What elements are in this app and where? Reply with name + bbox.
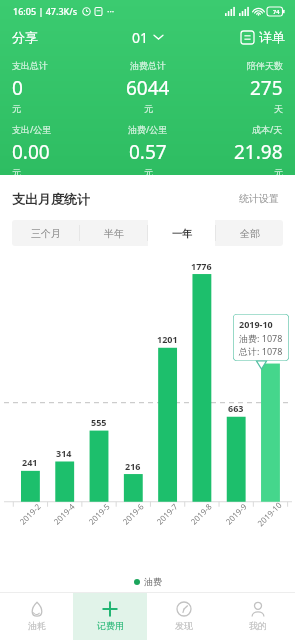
staticText: 74 <box>273 8 280 15</box>
staticText: 统计设置 <box>239 192 279 205</box>
staticText: 2019-6 <box>120 500 146 527</box>
button[interactable]: 统计设置 <box>235 188 283 209</box>
staticText: 元 <box>12 103 21 114</box>
staticText: 成本/天 <box>252 123 283 135</box>
staticText: 记费用 <box>97 620 124 631</box>
staticText: 支出/公里 <box>12 123 52 135</box>
staticText: 支出月度统计 <box>12 191 90 207</box>
staticText: 0.00 <box>12 139 50 165</box>
staticText: 详单 <box>259 29 285 45</box>
staticText: 2019-7 <box>154 500 180 527</box>
staticText: 2019-8 <box>188 500 214 527</box>
staticText: ··· <box>107 5 115 17</box>
staticText: 216 <box>125 460 141 472</box>
button[interactable]: 我的 <box>221 593 295 640</box>
staticText: 油费: 1078 <box>239 332 283 344</box>
staticText: 16:05 | 47.3K/s <box>13 5 78 17</box>
button[interactable]: 全部 <box>216 220 283 246</box>
staticText: 01 <box>132 28 149 46</box>
staticText: 1776 <box>191 260 212 272</box>
button[interactable]: 油耗 <box>0 593 73 640</box>
staticText: 663 <box>228 402 244 414</box>
staticText: 半年 <box>104 227 124 240</box>
staticText: 油费/公里 <box>128 123 168 135</box>
button[interactable]: 一年 <box>148 220 215 246</box>
staticText: 0.57 <box>129 139 167 165</box>
staticText: 一年 <box>172 227 192 240</box>
staticText: 分享 <box>12 29 38 45</box>
staticText: 陪伴天数 <box>247 60 283 71</box>
staticText: 1078 <box>259 349 280 361</box>
staticText: 元 <box>12 167 21 175</box>
staticText: 241 <box>22 456 38 468</box>
other: 油耗 <box>29 601 45 617</box>
staticText: 21.98 <box>234 139 283 165</box>
button[interactable]: 发现 <box>147 593 221 640</box>
staticText: 发现 <box>175 620 193 631</box>
staticText: 我的 <box>249 620 267 631</box>
button[interactable]: 分享 <box>0 24 50 50</box>
staticText: 三个月 <box>31 227 61 240</box>
staticText: 275 <box>250 75 283 101</box>
staticText: 总计: 1078 <box>239 345 283 357</box>
staticText: 6044 <box>126 75 170 101</box>
staticText: 元 <box>144 167 153 175</box>
staticText: 2019-2 <box>17 500 43 527</box>
staticText: 元 <box>274 167 283 175</box>
button[interactable]: 01 <box>126 22 169 52</box>
staticText: 2019-10 <box>239 318 273 330</box>
other: 我的 <box>250 601 266 617</box>
staticText: 天 <box>274 103 283 114</box>
staticText: 支出总计 <box>12 60 48 71</box>
staticText: 油费总计 <box>130 60 166 71</box>
staticText: 2019-4 <box>51 500 77 527</box>
other: 记费用 <box>102 601 118 617</box>
staticText: 2019-9 <box>223 500 249 527</box>
staticText: 0 <box>12 75 23 101</box>
staticText: 2019-5 <box>86 500 112 527</box>
staticText: 555 <box>91 416 107 428</box>
staticText: 2019-10 <box>255 499 284 528</box>
staticText: 314 <box>56 447 72 459</box>
staticText: 油费 <box>144 576 162 587</box>
button[interactable]: 三个月 <box>12 220 79 246</box>
staticText: 全部 <box>240 227 260 240</box>
button[interactable]: 记费用 <box>73 593 147 640</box>
staticText: 元 <box>144 103 153 114</box>
staticText: 1201 <box>157 333 178 345</box>
button[interactable]: 详单 <box>231 25 295 49</box>
staticText: 油耗 <box>28 620 46 631</box>
button[interactable]: 半年 <box>80 220 147 246</box>
other: 发现 <box>176 601 192 617</box>
